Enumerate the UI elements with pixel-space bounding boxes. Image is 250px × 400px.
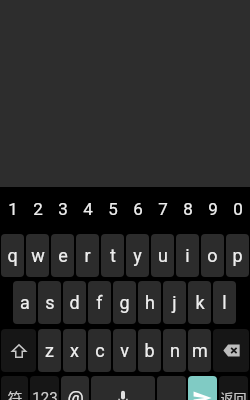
button[interactable]: Backspace [213,329,249,372]
staticText: i [185,245,190,266]
button[interactable]: o [201,234,224,277]
staticText: 4 [83,199,93,219]
staticText: h [145,292,155,313]
button[interactable]: 3 [50,187,75,234]
button[interactable]: j [163,281,186,324]
button[interactable]: t [101,234,124,277]
staticText: w [31,245,45,266]
staticText: e [58,245,68,266]
button[interactable]: p [226,234,249,277]
button[interactable]: d [63,281,86,324]
staticText: v [120,340,129,361]
button[interactable]: 符 [1,376,28,400]
button[interactable]: 123 [30,376,59,400]
staticText: c [95,340,105,361]
button[interactable]: @ [61,376,89,400]
button[interactable]: w [26,234,49,277]
button[interactable]: 返回 [219,376,248,400]
staticText: u [158,245,168,266]
staticText: 5 [108,199,118,219]
button[interactable]: 6 [125,187,150,234]
button[interactable]: e [51,234,74,277]
button[interactable]: u [151,234,174,277]
button[interactable]: h [138,281,161,324]
staticText: q [7,245,18,266]
button[interactable] [157,376,186,400]
button[interactable]: c [88,329,111,372]
button[interactable]: 8 [175,187,200,234]
button[interactable]: 0 [225,187,250,234]
button[interactable]: l [213,281,236,324]
button[interactable]: z [38,329,61,372]
button[interactable]: 9 [200,187,225,234]
button[interactable]: k [188,281,211,324]
button[interactable]: r [76,234,99,277]
button[interactable]: x [63,329,86,372]
button[interactable]: b [138,329,161,372]
button[interactable]: 5 [100,187,125,234]
button[interactable]: m [188,329,211,372]
staticText: n [170,340,180,361]
button[interactable]: f [88,281,111,324]
button[interactable]: Shift [1,329,36,372]
staticText: p [232,245,243,266]
staticText: t [110,245,116,266]
staticText: b [144,340,155,361]
staticText: d [69,292,80,313]
button[interactable]: q [1,234,24,277]
staticText: 123 [32,389,58,400]
staticText: y [133,245,142,266]
staticText: x [70,340,79,361]
button[interactable]: n [163,329,186,372]
button[interactable]: i [176,234,199,277]
button[interactable]: Send [188,376,217,400]
button[interactable]: 1 [0,187,25,234]
staticText: m [192,340,208,361]
staticText: 3 [58,199,68,219]
staticText: 6 [133,199,143,219]
button[interactable]: 7 [150,187,175,234]
staticText: f [96,292,103,313]
staticText: j [172,292,177,313]
staticText: a [20,292,30,313]
button[interactable]: 2 [25,187,50,234]
button[interactable]: v [113,329,136,372]
button[interactable]: g [113,281,136,324]
staticText: 9 [208,199,218,219]
staticText: l [222,292,227,313]
button[interactable]: 4 [75,187,100,234]
staticText: 返回 [220,388,247,400]
staticText: s [45,292,55,313]
button[interactable]: y [126,234,149,277]
staticText: o [207,245,218,266]
staticText: z [45,340,54,361]
staticText: 1 [8,199,18,219]
staticText: 0 [233,199,243,219]
staticText: @ [67,387,84,400]
staticText: 7 [158,199,168,219]
button[interactable]: Space [91,376,155,400]
staticText: 符 [7,387,23,400]
button[interactable]: a [13,281,36,324]
staticText: 2 [33,199,43,219]
button[interactable]: s [38,281,61,324]
staticText: 8 [183,199,193,219]
staticText: g [119,292,130,313]
staticText: k [195,292,205,313]
staticText: r [84,245,91,266]
